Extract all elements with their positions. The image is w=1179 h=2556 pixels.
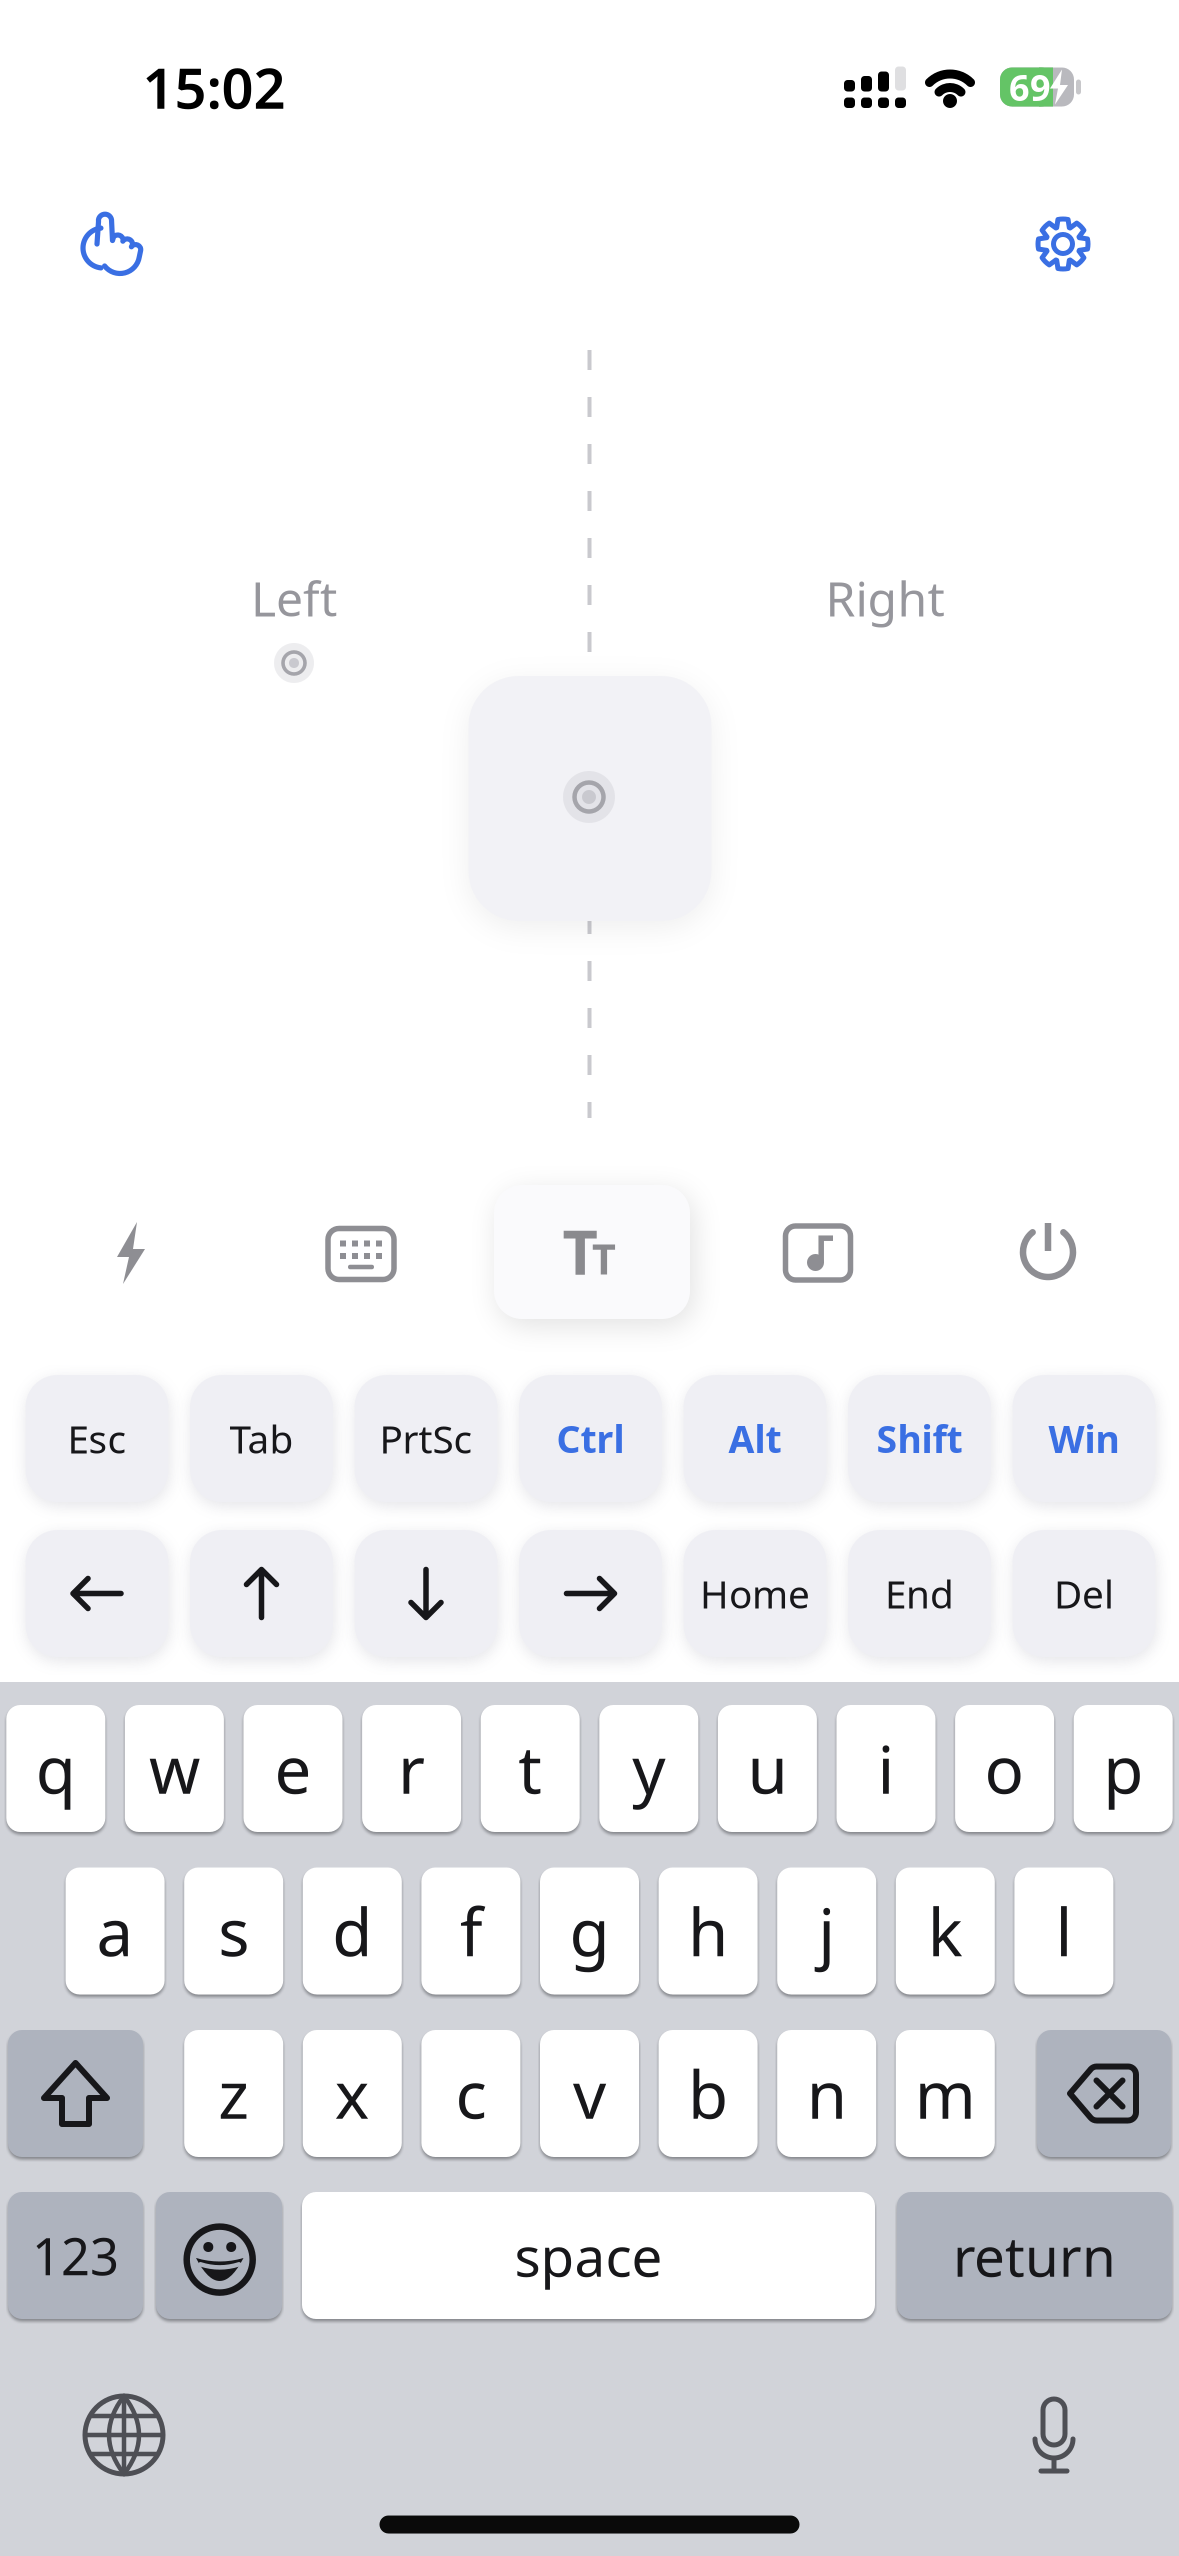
staticText: w <box>149 1725 200 1812</box>
button[interactable]: j <box>777 1867 876 1994</box>
button[interactable]: Next keyboard <box>81 2392 167 2478</box>
staticText: j <box>818 1888 835 1974</box>
button[interactable]: 123 <box>8 2192 143 2319</box>
button[interactable]: h <box>659 1867 758 1994</box>
button[interactable]: Alt <box>683 1375 826 1502</box>
button[interactable]: t <box>481 1705 580 1832</box>
staticText: l <box>1055 1888 1072 1974</box>
button[interactable]: f <box>421 1867 520 1994</box>
staticText: r <box>398 1725 425 1812</box>
staticText: a <box>97 1888 134 1974</box>
button[interactable]: c <box>421 2030 520 2157</box>
button[interactable]: Media <box>778 1213 858 1293</box>
staticText: x <box>335 2050 370 2137</box>
staticText: PrtSc <box>379 1413 472 1464</box>
button[interactable]: PrtSc <box>354 1375 497 1502</box>
staticText: t <box>518 1725 542 1812</box>
button[interactable]: Up arrow <box>190 1530 333 1657</box>
button[interactable]: Shift <box>8 2030 143 2157</box>
button[interactable]: g <box>540 1867 639 1994</box>
button[interactable]: Emoji <box>156 2192 282 2319</box>
staticText: u <box>747 1725 787 1812</box>
button[interactable]: x <box>303 2030 402 2157</box>
staticText: h <box>688 1888 728 1974</box>
button[interactable]: Settings <box>1027 208 1099 280</box>
staticText: c <box>455 2050 486 2137</box>
button[interactable]: u <box>718 1705 817 1832</box>
staticText: Tab <box>229 1413 293 1464</box>
staticText: g <box>569 1888 609 1974</box>
button[interactable]: Ctrl <box>519 1375 662 1502</box>
staticText: f <box>460 1888 482 1974</box>
button[interactable]: Down arrow <box>354 1530 497 1657</box>
button[interactable]: Keyboard <box>321 1214 401 1294</box>
button[interactable]: r <box>362 1705 461 1832</box>
staticText: i <box>877 1725 894 1812</box>
button[interactable]: o <box>955 1705 1054 1832</box>
button[interactable]: Shortcuts <box>91 1213 171 1293</box>
button[interactable]: Esc <box>25 1375 168 1502</box>
button[interactable]: return <box>897 2192 1172 2319</box>
staticText: Left <box>251 566 337 630</box>
button[interactable]: n <box>777 2030 876 2157</box>
button[interactable]: s <box>184 1867 283 1994</box>
button[interactable]: Tab <box>190 1375 333 1502</box>
button[interactable]: v <box>540 2030 639 2157</box>
button[interactable]: End <box>848 1530 991 1657</box>
staticText: m <box>915 2050 976 2137</box>
staticText: s <box>218 1888 249 1974</box>
staticText: Alt <box>728 1414 781 1463</box>
button[interactable]: e <box>243 1705 342 1832</box>
staticText: z <box>218 2050 249 2137</box>
staticText: 15:02 <box>142 50 285 124</box>
button[interactable]: k <box>896 1867 995 1994</box>
button[interactable]: Del <box>1012 1530 1155 1657</box>
staticText: End <box>885 1568 954 1619</box>
button[interactable]: Power <box>1007 1214 1087 1294</box>
staticText: 123 <box>32 2222 119 2289</box>
button[interactable]: Win <box>1012 1375 1155 1502</box>
button[interactable]: space <box>302 2192 875 2319</box>
staticText: 69 <box>1009 63 1051 111</box>
button[interactable]: Text input <box>494 1185 690 1319</box>
staticText: return <box>953 2219 1116 2292</box>
button[interactable]: d <box>303 1867 402 1994</box>
button[interactable]: Trackpad button <box>468 676 711 921</box>
staticText: Shift <box>876 1414 962 1463</box>
button[interactable]: p <box>1074 1705 1173 1832</box>
staticText: Ctrl <box>556 1414 624 1463</box>
button[interactable]: Dictation <box>1019 2395 1089 2481</box>
staticText: y <box>632 1725 665 1812</box>
staticText: p <box>1103 1725 1143 1812</box>
staticText: Home <box>700 1568 810 1619</box>
staticText: T <box>562 1210 597 1292</box>
button[interactable]: Left arrow <box>25 1530 168 1657</box>
button[interactable]: q <box>6 1705 105 1832</box>
staticText: Win <box>1048 1414 1119 1463</box>
staticText: space <box>514 2219 662 2292</box>
staticText: n <box>807 2050 847 2137</box>
button[interactable]: b <box>659 2030 758 2157</box>
button[interactable]: Home <box>683 1530 826 1657</box>
button[interactable]: l <box>1014 1867 1113 1994</box>
button[interactable]: i <box>836 1705 935 1832</box>
button[interactable]: Delete <box>1037 2030 1171 2157</box>
staticText: b <box>688 2050 728 2137</box>
button[interactable]: z <box>184 2030 283 2157</box>
staticText: q <box>36 1725 76 1812</box>
staticText: e <box>274 1725 311 1812</box>
button[interactable]: m <box>896 2030 995 2157</box>
staticText: Esc <box>67 1413 126 1464</box>
button[interactable]: Pointer mode <box>77 207 153 283</box>
button[interactable]: Right arrow <box>519 1530 662 1657</box>
staticText: d <box>332 1888 372 1974</box>
button[interactable]: y <box>599 1705 698 1832</box>
button[interactable]: a <box>66 1867 165 1994</box>
button[interactable]: Shift <box>848 1375 991 1502</box>
staticText: Del <box>1054 1568 1114 1619</box>
staticText: k <box>928 1888 963 1974</box>
staticText: Right <box>825 566 944 630</box>
staticText: v <box>573 2050 606 2137</box>
staticText: T <box>592 1231 616 1286</box>
button[interactable]: w <box>125 1705 224 1832</box>
